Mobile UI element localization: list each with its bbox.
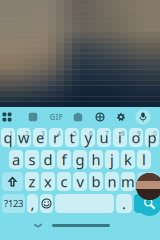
staticText: ?123	[4, 197, 23, 210]
button[interactable]: e	[33, 128, 47, 147]
staticText: u	[99, 128, 108, 147]
button[interactable]: o	[129, 128, 143, 147]
button[interactable]: c	[57, 172, 71, 191]
staticText: m	[121, 172, 135, 191]
staticText: w	[18, 128, 30, 147]
button[interactable]: z	[25, 172, 39, 191]
button[interactable]: Apps	[0, 107, 17, 127]
staticText: c	[60, 172, 67, 191]
button[interactable]: b	[89, 172, 103, 191]
button[interactable]: t	[65, 128, 79, 147]
staticText: n	[107, 172, 116, 191]
staticText: f	[61, 150, 66, 169]
staticText: .	[122, 194, 126, 213]
button[interactable]: Stickers	[23, 107, 43, 127]
staticText: 9	[137, 129, 141, 138]
button[interactable]: ,	[27, 194, 38, 213]
button[interactable]: Hide keyboard	[24, 217, 52, 233]
button[interactable]: d	[41, 150, 55, 169]
button[interactable]: u	[97, 128, 111, 147]
button[interactable]: a	[9, 150, 23, 169]
button[interactable]: h	[89, 150, 103, 169]
staticText: y	[84, 128, 91, 147]
button[interactable]: i	[113, 128, 127, 147]
button[interactable]: k	[121, 150, 135, 169]
staticText: z	[28, 172, 35, 191]
button[interactable]: Translate	[90, 107, 110, 127]
staticText: q	[3, 128, 12, 147]
staticText: ,	[30, 194, 34, 213]
staticText: v	[76, 172, 83, 191]
button[interactable]: n	[105, 172, 119, 191]
staticText: b	[91, 172, 100, 191]
staticText: 7	[105, 129, 109, 138]
staticText: e	[36, 128, 44, 147]
staticText: 0	[153, 129, 157, 138]
staticText: l	[142, 150, 146, 169]
button[interactable]: Settings	[111, 107, 131, 127]
staticText: o	[131, 128, 140, 147]
staticText: t	[69, 128, 74, 147]
button[interactable]: j	[105, 150, 119, 169]
button[interactable]: f	[57, 150, 71, 169]
button[interactable]: Backspace	[137, 172, 158, 191]
staticText: x	[44, 172, 52, 191]
button[interactable]: .	[116, 194, 132, 213]
staticText: 4	[57, 129, 61, 138]
button[interactable]: ?123	[2, 194, 25, 213]
staticText: 5	[73, 129, 77, 138]
button[interactable]: Emoji	[40, 194, 53, 213]
button[interactable]: p	[145, 128, 159, 147]
button[interactable]: r	[49, 128, 63, 147]
staticText: k	[124, 150, 132, 169]
button[interactable]: Clipboard	[68, 107, 88, 127]
button[interactable]: v	[73, 172, 87, 191]
staticText: s	[28, 150, 35, 169]
staticText: g	[75, 150, 84, 169]
button[interactable]: Contact	[136, 173, 160, 200]
button[interactable]	[55, 194, 114, 213]
button[interactable]: Search	[137, 191, 160, 216]
staticText: a	[12, 150, 20, 169]
staticText: 8	[121, 129, 125, 138]
staticText: GIF	[49, 112, 62, 122]
button[interactable]: g	[73, 150, 87, 169]
staticText: d	[43, 150, 52, 169]
button[interactable]: w	[17, 128, 31, 147]
button[interactable]: Shift	[2, 172, 23, 191]
staticText: j	[110, 150, 114, 169]
staticText: p	[147, 128, 156, 147]
button[interactable]: y	[81, 128, 95, 147]
staticText: r	[53, 128, 59, 147]
staticText: 1	[9, 129, 13, 138]
staticText: h	[91, 150, 100, 169]
button[interactable]: Enter	[134, 194, 158, 213]
button[interactable]: Voice input	[133, 107, 153, 127]
button[interactable]: s	[25, 150, 39, 169]
button[interactable]: q	[1, 128, 15, 147]
staticText: 6	[89, 129, 93, 138]
button[interactable]: m	[121, 172, 135, 191]
button[interactable]: GIF	[46, 107, 66, 127]
button[interactable]: x	[41, 172, 55, 191]
staticText: i	[118, 128, 122, 147]
button[interactable]: l	[137, 150, 151, 169]
staticText: 2	[25, 129, 29, 138]
staticText: 3	[41, 129, 45, 138]
